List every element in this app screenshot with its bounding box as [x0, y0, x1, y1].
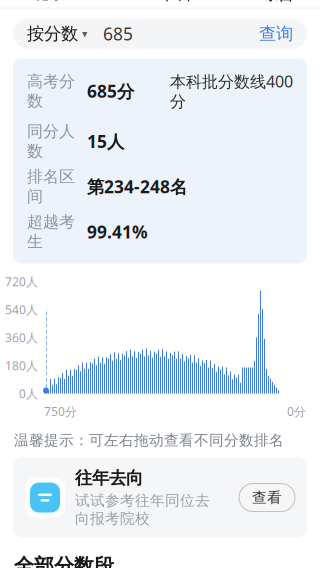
- staticText: 按分数: [27, 23, 78, 44]
- staticText: 超越考生: [27, 212, 75, 251]
- staticText: 720人: [5, 273, 38, 289]
- button[interactable]: 按分数: [13, 19, 307, 49]
- staticText: 180人: [5, 357, 38, 373]
- button[interactable]: 往年去向: [13, 457, 307, 538]
- staticText: 99.41%: [87, 220, 148, 243]
- button[interactable]: 北京: [26, 0, 81, 7]
- button[interactable]: 2021本科: [112, 0, 207, 8]
- staticText: 往年去向: [75, 467, 143, 489]
- staticText: 685: [103, 22, 133, 45]
- staticText: 2021本科: [118, 0, 192, 4]
- staticText: 查看: [252, 489, 282, 507]
- staticText: 查询: [259, 23, 293, 44]
- staticText: 同分人数: [27, 122, 75, 161]
- button[interactable]: 3+3综合: [224, 0, 309, 8]
- staticText: 排名区间: [27, 167, 75, 206]
- staticText: 685分: [87, 80, 134, 103]
- staticText: 试试参考往年同位去向报考院校: [75, 492, 210, 528]
- staticText: 15人: [87, 130, 124, 153]
- staticText: 0人: [19, 385, 38, 401]
- staticText: 540人: [5, 301, 38, 317]
- staticText: 750分: [44, 403, 77, 419]
- staticText: 高考分数: [27, 71, 75, 111]
- staticText: 本科批分数线400分: [170, 71, 293, 112]
- staticText: ▾: [82, 28, 87, 40]
- staticText: 全部分数段: [14, 554, 114, 568]
- staticText: 第234-248名: [87, 175, 187, 198]
- staticText: 0分: [287, 403, 306, 419]
- staticText: 360人: [5, 329, 38, 345]
- staticText: 北京: [32, 0, 66, 3]
- staticText: 3+3综合: [230, 0, 294, 4]
- staticText: 温馨提示：可左右拖动查看不同分数排名: [14, 431, 284, 449]
